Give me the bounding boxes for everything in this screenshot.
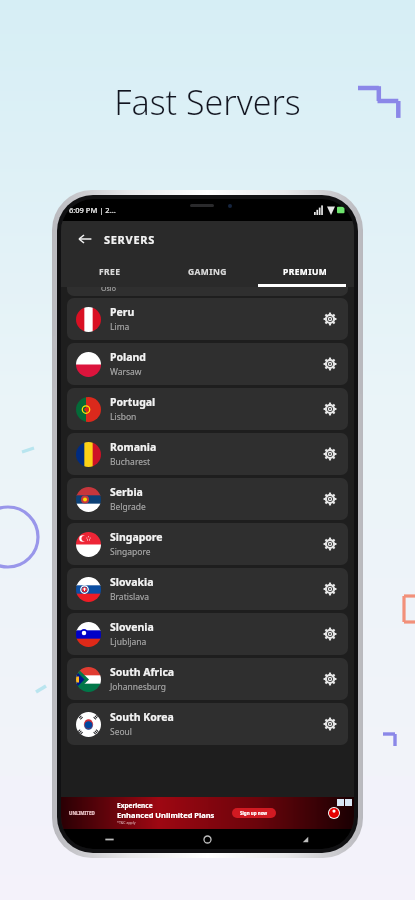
button[interactable]: Settings for South Africa bbox=[321, 670, 339, 688]
staticText: South Korea bbox=[110, 710, 174, 724]
staticText: Oslo bbox=[101, 287, 116, 293]
button[interactable]: Settings for South Korea bbox=[321, 715, 339, 733]
button[interactable]: Serbia bbox=[67, 478, 348, 520]
staticText: Poland bbox=[110, 350, 146, 364]
button[interactable]: Settings for Portugal bbox=[321, 400, 339, 418]
staticText: Slovakia bbox=[110, 575, 154, 589]
staticText: *T&C apply bbox=[117, 820, 136, 825]
staticText: 6:09 PM | 2… bbox=[69, 205, 116, 215]
button[interactable]: Settings for Romania bbox=[321, 445, 339, 463]
button[interactable]: Back bbox=[75, 229, 95, 249]
staticText: Bratislava bbox=[110, 591, 150, 603]
staticText: GAMING bbox=[188, 266, 227, 278]
button[interactable]: Slovakia bbox=[67, 568, 348, 610]
staticText: PREMIUM bbox=[283, 266, 328, 278]
button[interactable]: Back bbox=[61, 221, 354, 257]
button[interactable]: GAMING bbox=[158, 257, 256, 287]
staticText: UNLIMITED bbox=[69, 810, 95, 816]
staticText: Slovenia bbox=[110, 620, 154, 634]
button[interactable]: Slovenia bbox=[67, 613, 348, 655]
staticText: Portugal bbox=[110, 395, 156, 409]
staticText: Experience bbox=[117, 801, 153, 810]
staticText: Bucharest bbox=[110, 456, 151, 468]
staticText: Warsaw bbox=[110, 366, 142, 378]
staticText: South Africa bbox=[110, 665, 175, 679]
button[interactable]: Poland bbox=[67, 343, 348, 385]
button[interactable]: Settings for Peru bbox=[321, 310, 339, 328]
staticText: Peru bbox=[110, 305, 135, 319]
button[interactable]: Sign up now bbox=[232, 808, 276, 818]
staticText: Lima bbox=[110, 321, 130, 333]
staticText: Enhanced Unlimited Plans bbox=[117, 810, 215, 820]
button[interactable]: PREMIUM bbox=[256, 257, 354, 287]
button[interactable]: Recents bbox=[61, 829, 158, 849]
button[interactable]: Home bbox=[158, 829, 256, 849]
button[interactable]: Romania bbox=[67, 433, 348, 475]
button[interactable]: South Africa bbox=[67, 658, 348, 700]
staticText: Fast Servers bbox=[0, 79, 415, 125]
button[interactable]: Settings for Singapore bbox=[321, 535, 339, 553]
button[interactable]: Settings for Serbia bbox=[321, 490, 339, 508]
button[interactable]: Peru bbox=[67, 298, 348, 340]
staticText: Lisbon bbox=[110, 411, 137, 423]
button[interactable]: Settings for Poland bbox=[321, 355, 339, 373]
staticText: SERVERS bbox=[104, 232, 155, 247]
button[interactable]: Settings for Slovakia bbox=[321, 580, 339, 598]
staticText: Serbia bbox=[110, 485, 143, 499]
button[interactable]: FREE bbox=[61, 257, 158, 287]
button[interactable]: Portugal bbox=[67, 388, 348, 430]
button[interactable]: Back bbox=[256, 829, 354, 849]
button[interactable]: UNLIMITED bbox=[61, 797, 354, 829]
staticText: Ljubljana bbox=[110, 636, 147, 648]
staticText: Romania bbox=[110, 440, 157, 454]
staticText: Belgrade bbox=[110, 501, 146, 513]
button[interactable]: Settings for Slovenia bbox=[321, 625, 339, 643]
staticText: Johannesburg bbox=[110, 681, 166, 693]
staticText: Singapore bbox=[110, 546, 151, 558]
button[interactable]: South Korea bbox=[67, 703, 348, 745]
staticText: Seoul bbox=[110, 726, 133, 738]
staticText: Sign up now bbox=[240, 810, 268, 816]
button[interactable]: Oslo bbox=[67, 287, 348, 296]
staticText: FREE bbox=[99, 266, 121, 278]
button[interactable]: Singapore bbox=[67, 523, 348, 565]
staticText: Singapore bbox=[110, 530, 163, 544]
